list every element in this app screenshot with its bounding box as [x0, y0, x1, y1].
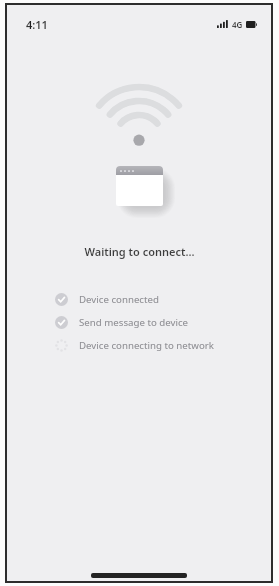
staticText: Device connected [79, 293, 159, 306]
other: Signal strength [217, 20, 229, 28]
staticText: Waiting to connect... [84, 244, 195, 259]
staticText: 4:11 [26, 17, 48, 32]
staticText: Send message to device [79, 316, 189, 329]
button[interactable]: Send message to device [55, 311, 223, 334]
staticText: Device connecting to network [79, 339, 214, 352]
button[interactable]: Device connecting to network [55, 334, 223, 357]
button[interactable]: Device connected [55, 288, 223, 311]
staticText: 4G [232, 19, 243, 30]
other: Battery [246, 21, 257, 28]
